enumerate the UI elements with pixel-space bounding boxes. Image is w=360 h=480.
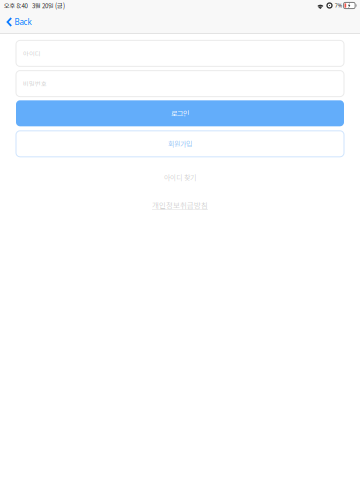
button[interactable]: 아이디 xyxy=(16,40,344,66)
button[interactable]: 비밀번호 xyxy=(16,71,344,97)
staticText: 아이디 xyxy=(23,49,41,58)
staticText: 비밀번호 xyxy=(23,79,47,88)
staticText: 7% xyxy=(335,2,342,9)
staticText: 로그인 xyxy=(171,108,189,118)
button[interactable]: Back xyxy=(0,13,41,31)
button[interactable]: 아이디 찾기 xyxy=(152,167,208,187)
staticText: 3월 20일 (금) xyxy=(32,1,65,10)
button[interactable]: 회원가입 xyxy=(16,131,344,157)
button[interactable]: 개인정보취급방침 xyxy=(140,195,220,215)
staticText: 오후 8:40 xyxy=(3,1,27,10)
button[interactable]: 로그인 xyxy=(16,100,344,126)
staticText: 아이디 찾기 xyxy=(164,172,196,182)
staticText: Back xyxy=(14,17,31,27)
staticText: 개인정보취급방침 xyxy=(152,200,208,210)
staticText: 회원가입 xyxy=(168,139,192,149)
